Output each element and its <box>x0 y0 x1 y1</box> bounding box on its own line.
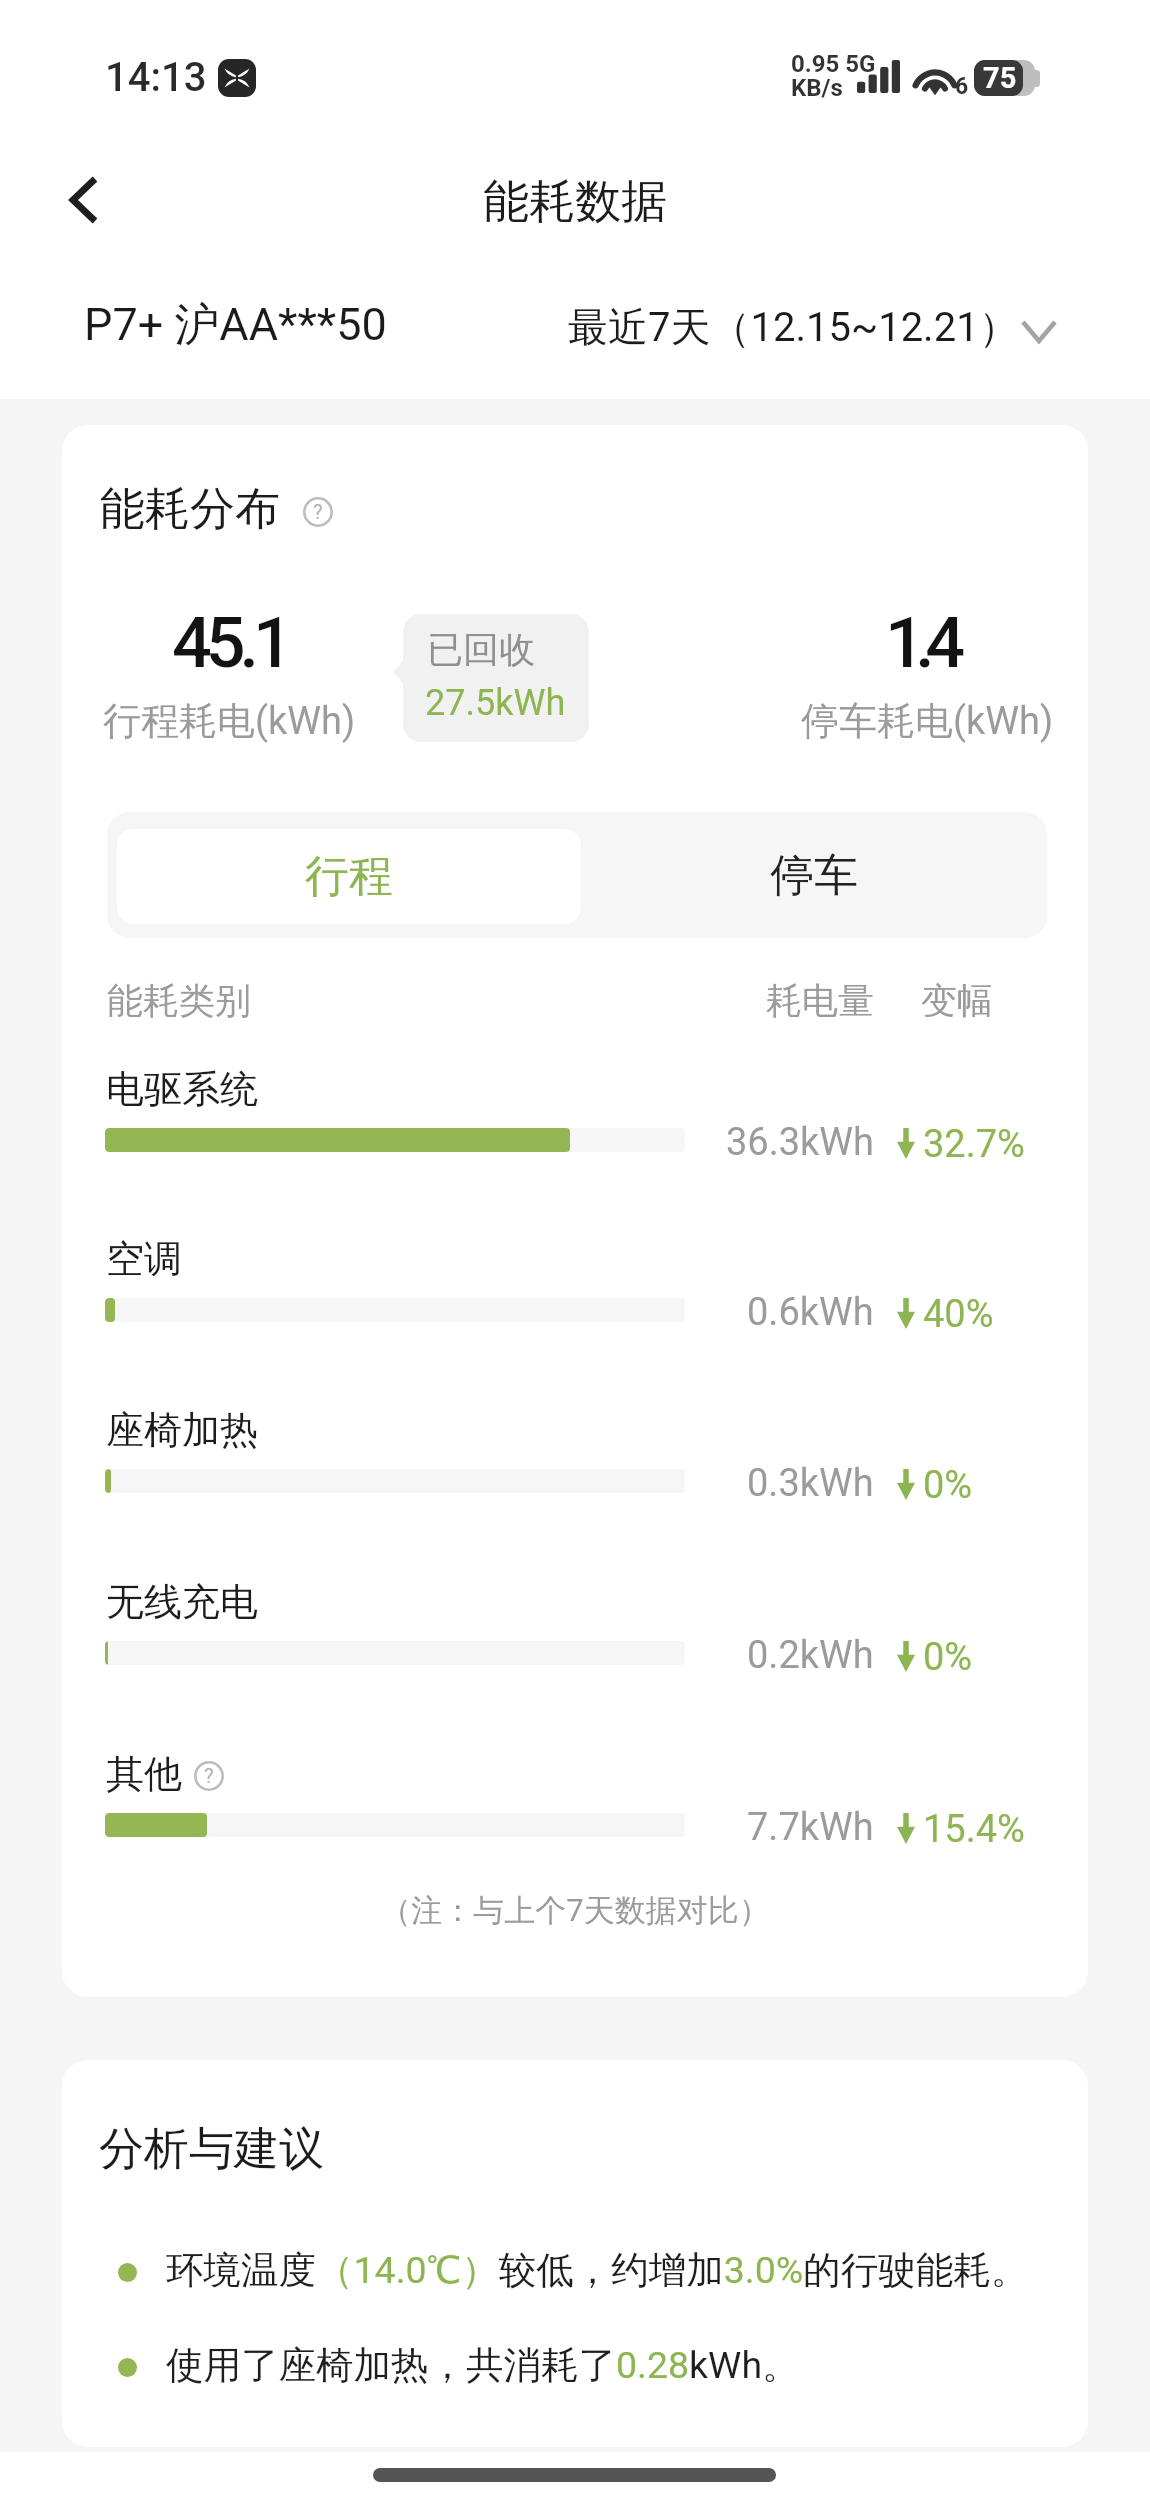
staticText: 耗电量 <box>766 978 874 1023</box>
staticText: 已回收 <box>427 627 535 672</box>
staticText: 0% <box>923 1635 973 1680</box>
staticText: 6 <box>955 73 969 100</box>
staticText: 75 <box>983 61 1017 95</box>
staticText: 停车 <box>770 848 858 903</box>
button[interactable]: Back <box>38 154 130 246</box>
staticText: 使用了座椅加热，共消耗了0.28kWh。 <box>166 2342 800 2389</box>
staticText: 环境温度（14.0℃）较低，约增加3.0%的行驶能耗。 <box>166 2247 1029 2294</box>
staticText: 14:13 <box>105 54 207 101</box>
staticText: 27.5kWh <box>425 682 566 724</box>
staticText: 0% <box>923 1463 973 1508</box>
staticText: 1.4 <box>885 602 956 684</box>
staticText: 0.6kWh <box>747 1290 874 1335</box>
button[interactable]: About other consumption <box>194 1761 224 1791</box>
staticText: 0.3kWh <box>747 1461 874 1506</box>
staticText: 空调 <box>106 1235 182 1283</box>
staticText: 变幅 <box>921 978 993 1023</box>
staticText: 行程 <box>305 849 393 904</box>
staticText: 停车耗电(kWh) <box>801 697 1054 745</box>
staticText: 分析与建议 <box>99 2121 324 2178</box>
staticText: 电驱系统 <box>106 1065 258 1113</box>
staticText: P7+ 沪AA***50 <box>84 297 387 354</box>
staticText: 座椅加热 <box>106 1406 258 1454</box>
staticText: 32.7% <box>923 1122 1025 1167</box>
button[interactable]: 行程 <box>117 829 581 924</box>
staticText: 36.3kWh <box>726 1120 874 1165</box>
staticText: 其他 <box>106 1750 182 1798</box>
button[interactable]: About energy distribution <box>303 497 333 527</box>
staticText: 0.95 5G <box>791 50 876 78</box>
staticText: （注：与上个7天数据对比） <box>62 1891 1088 1930</box>
staticText: 能耗数据 <box>483 173 667 231</box>
staticText: ? <box>313 500 323 524</box>
staticText: KB/s <box>791 74 843 102</box>
staticText: ? <box>204 1764 214 1788</box>
staticText: 无线充电 <box>106 1578 258 1626</box>
button[interactable]: 停车 <box>581 812 1047 938</box>
staticText: 行程耗电(kWh) <box>103 697 356 745</box>
staticText: 能耗类别 <box>107 978 251 1023</box>
staticText: 最近7天（12.15~12.21） <box>568 302 1019 352</box>
staticText: 0.2kWh <box>747 1633 874 1678</box>
staticText: 40% <box>923 1292 994 1337</box>
staticText: 15.4% <box>923 1807 1025 1852</box>
staticText: 能耗分布 <box>100 481 280 538</box>
button[interactable]: 最近7天（12.15~12.21） <box>568 302 1055 352</box>
staticText: 45.1 <box>172 602 287 684</box>
staticText: 7.7kWh <box>747 1805 874 1850</box>
